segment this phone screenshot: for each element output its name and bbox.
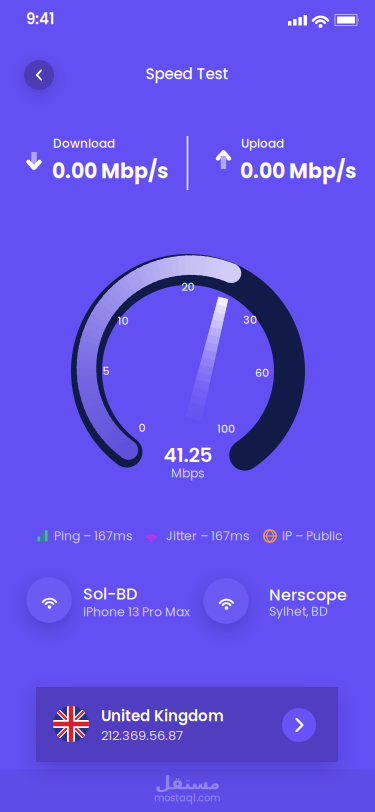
staticText: 30 xyxy=(243,312,257,328)
staticText: 0.00 Mbp/s xyxy=(240,157,356,185)
staticText: 9:41 xyxy=(26,8,54,29)
staticText: mostaql.com xyxy=(154,791,220,805)
button[interactable]: Back xyxy=(24,60,54,90)
staticText: Sol-BD xyxy=(83,583,137,605)
staticText: 0.00 Mbp/s xyxy=(52,157,168,185)
button[interactable]: Sol-BD xyxy=(0,0,375,812)
staticText: Upload xyxy=(241,135,284,152)
button[interactable]: United Kingdom xyxy=(0,0,375,812)
staticText: 212.369.56.87 xyxy=(101,726,183,745)
staticText: Speed Test xyxy=(145,63,228,84)
staticText: Ping – 167ms xyxy=(54,527,132,545)
staticText: 20 xyxy=(181,279,194,295)
staticText: مستقل xyxy=(154,772,219,793)
staticText: iPhone 13 Pro Max xyxy=(83,603,190,621)
staticText: 0 xyxy=(138,420,145,436)
staticText: 100 xyxy=(217,421,235,437)
staticText: Nerscope xyxy=(269,584,347,606)
staticText: 60 xyxy=(255,365,269,381)
staticText: Download xyxy=(53,135,115,152)
staticText: 5 xyxy=(102,363,109,379)
button[interactable]: Nerscope xyxy=(0,0,375,812)
staticText: Sylhet, BD xyxy=(269,603,328,620)
staticText: 41.25 xyxy=(163,441,212,469)
staticText: United Kingdom xyxy=(101,705,224,726)
staticText: Mbps xyxy=(171,464,205,482)
staticText: Jitter – 167ms xyxy=(166,527,249,545)
staticText: 10 xyxy=(117,313,128,329)
staticText: IP – Public xyxy=(282,527,342,545)
